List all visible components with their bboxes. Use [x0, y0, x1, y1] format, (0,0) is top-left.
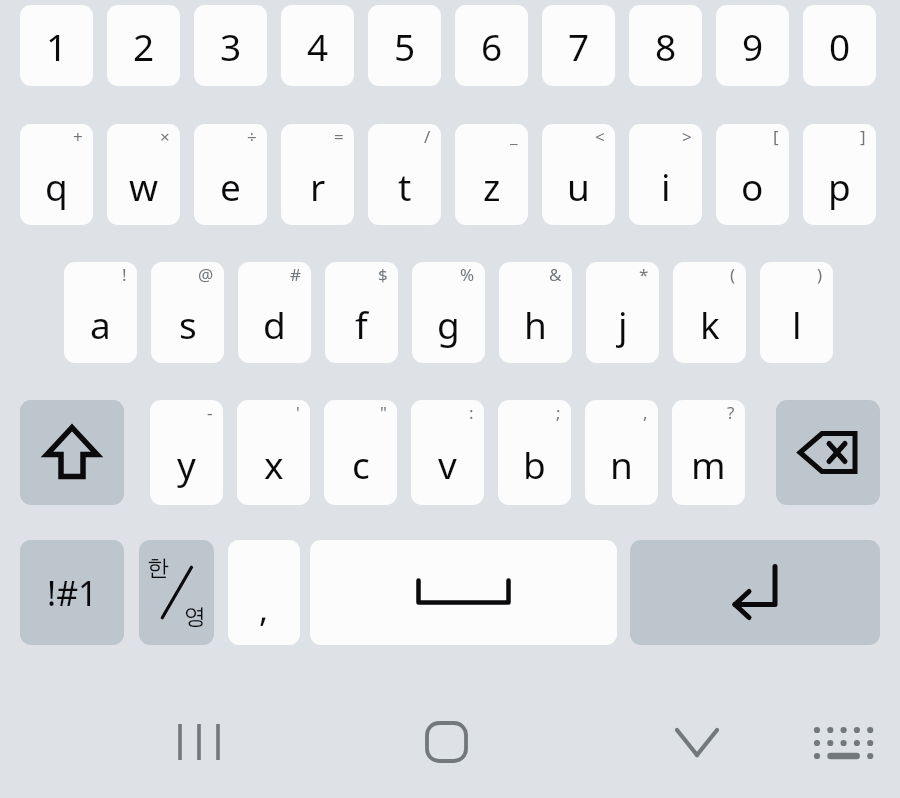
- button[interactable]: !: [64, 262, 137, 363]
- button[interactable]: ;: [498, 400, 571, 505]
- staticText: ;: [556, 401, 561, 424]
- button[interactable]: 3: [194, 5, 267, 86]
- button[interactable]: $: [325, 262, 398, 363]
- staticText: &: [549, 263, 562, 286]
- button[interactable]: 9: [716, 5, 789, 86]
- staticText: 7: [568, 21, 590, 71]
- button[interactable]: Backspace: [776, 400, 880, 505]
- staticText: ]: [860, 125, 866, 148]
- staticText: a: [90, 299, 111, 349]
- staticText: 5: [394, 21, 416, 71]
- staticText: :: [469, 401, 474, 424]
- button[interactable]: 4: [281, 5, 354, 86]
- staticText: d: [263, 299, 286, 349]
- staticText: x: [264, 439, 284, 489]
- button[interactable]: @: [151, 262, 224, 363]
- button[interactable]: %: [412, 262, 485, 363]
- staticText: y: [177, 439, 196, 489]
- button[interactable]: 0: [803, 5, 876, 86]
- button[interactable]: 5: [368, 5, 441, 86]
- staticText: j: [618, 299, 628, 349]
- button[interactable]: &: [499, 262, 572, 363]
- staticText: 8: [655, 21, 677, 71]
- staticText: m: [691, 439, 726, 489]
- button[interactable]: <: [542, 124, 615, 225]
- staticText: <: [595, 125, 605, 148]
- button[interactable]: ": [324, 400, 397, 505]
- button[interactable]: >: [629, 124, 702, 225]
- staticText: 2: [133, 21, 155, 71]
- button[interactable]: 8: [629, 5, 702, 86]
- button[interactable]: !#1: [20, 540, 124, 645]
- staticText: !#1: [47, 570, 98, 616]
- staticText: p: [828, 161, 851, 211]
- staticText: @: [198, 263, 214, 286]
- button[interactable]: =: [281, 124, 354, 225]
- button[interactable]: Home: [414, 706, 480, 778]
- button[interactable]: _: [455, 124, 528, 225]
- button[interactable]: 6: [455, 5, 528, 86]
- staticText: ÷: [247, 125, 257, 148]
- staticText: 1: [46, 21, 68, 71]
- staticText: u: [567, 161, 590, 211]
- staticText: 0: [829, 21, 851, 71]
- staticText: ,: [259, 586, 269, 632]
- button[interactable]: Shift: [20, 400, 124, 505]
- button[interactable]: *: [586, 262, 659, 363]
- button[interactable]: #: [238, 262, 311, 363]
- button[interactable]: ': [237, 400, 310, 505]
- staticText: ): [817, 263, 823, 286]
- button[interactable]: ×: [107, 124, 180, 225]
- staticText: [: [773, 125, 779, 148]
- button[interactable]: -: [150, 400, 223, 505]
- staticText: t: [398, 161, 412, 211]
- staticText: v: [438, 439, 457, 489]
- button[interactable]: ,: [585, 400, 658, 505]
- button[interactable]: 1: [20, 5, 93, 86]
- button[interactable]: ]: [803, 124, 876, 225]
- button[interactable]: Enter: [630, 540, 880, 645]
- staticText: $: [378, 263, 388, 286]
- staticText: l: [792, 299, 802, 349]
- staticText: o: [741, 161, 764, 211]
- button[interactable]: ?: [672, 400, 745, 505]
- button[interactable]: 2: [107, 5, 180, 86]
- button[interactable]: :: [411, 400, 484, 505]
- staticText: g: [437, 299, 460, 349]
- staticText: >: [682, 125, 692, 148]
- staticText: r: [310, 161, 326, 211]
- staticText: ": [380, 401, 387, 424]
- button[interactable]: /: [368, 124, 441, 225]
- button[interactable]: 7: [542, 5, 615, 86]
- staticText: i: [661, 161, 671, 211]
- staticText: *: [639, 263, 649, 286]
- staticText: 3: [220, 21, 242, 71]
- staticText: (: [730, 263, 736, 286]
- button[interactable]: Switch keyboard: [806, 714, 880, 774]
- staticText: 6: [481, 21, 503, 71]
- button[interactable]: +: [20, 124, 93, 225]
- staticText: q: [45, 161, 68, 211]
- button[interactable]: (: [673, 262, 746, 363]
- button[interactable]: Korean English toggle: [139, 540, 214, 645]
- staticText: z: [483, 161, 501, 211]
- button[interactable]: ,: [228, 540, 300, 645]
- staticText: f: [355, 299, 368, 349]
- staticText: 영: [184, 603, 206, 631]
- staticText: b: [523, 439, 546, 489]
- staticText: e: [220, 161, 241, 211]
- button[interactable]: ÷: [194, 124, 267, 225]
- staticText: ': [296, 401, 300, 424]
- button[interactable]: ): [760, 262, 833, 363]
- staticText: 9: [742, 21, 764, 71]
- staticText: ,: [643, 401, 648, 424]
- staticText: _: [510, 125, 518, 148]
- staticText: /: [424, 125, 431, 148]
- button[interactable]: Space: [310, 540, 617, 645]
- staticText: s: [179, 299, 197, 349]
- button[interactable]: [: [716, 124, 789, 225]
- staticText: n: [610, 439, 633, 489]
- staticText: +: [73, 125, 83, 148]
- button[interactable]: Recents: [160, 706, 226, 778]
- button[interactable]: Hide keyboard: [664, 710, 730, 774]
